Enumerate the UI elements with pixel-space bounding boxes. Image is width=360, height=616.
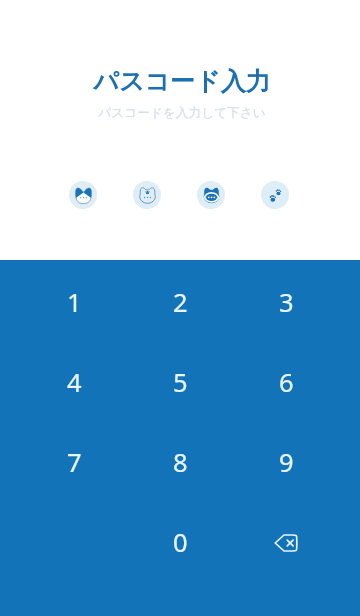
- button[interactable]: 3: [233, 262, 339, 342]
- button[interactable]: 5: [127, 342, 233, 422]
- button[interactable]: 1: [21, 262, 127, 342]
- button[interactable]: 8: [127, 422, 233, 502]
- button[interactable]: 9: [233, 422, 339, 502]
- button[interactable]: 2: [127, 262, 233, 342]
- button[interactable]: Passcode digit 1 entered: [69, 181, 97, 209]
- staticText: 9: [279, 445, 294, 480]
- staticText: 1: [67, 285, 82, 320]
- button[interactable]: 6: [233, 342, 339, 422]
- staticText: 8: [173, 445, 188, 480]
- button[interactable]: 4: [21, 342, 127, 422]
- button[interactable]: Passcode digit 4 empty: [261, 181, 289, 209]
- staticText: 7: [67, 445, 82, 480]
- staticText: 2: [173, 285, 188, 320]
- staticText: 3: [279, 285, 294, 320]
- button[interactable]: Passcode digit 2 empty: [133, 181, 161, 209]
- button[interactable]: 7: [21, 422, 127, 502]
- button[interactable]: Delete: [233, 502, 339, 582]
- staticText: 0: [173, 525, 188, 560]
- button[interactable]: 0: [127, 502, 233, 582]
- staticText: パスコードを入力して下さい: [98, 105, 266, 121]
- staticText: 6: [279, 365, 294, 400]
- staticText: 5: [173, 365, 188, 400]
- staticText: パスコード入力: [93, 66, 271, 97]
- staticText: 4: [67, 365, 82, 400]
- button[interactable]: Passcode digit 3 empty: [197, 181, 225, 209]
